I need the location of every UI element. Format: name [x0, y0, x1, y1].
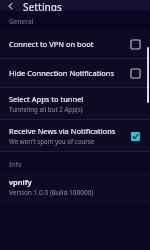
- button[interactable]: Connect to VPN on boot: [0, 30, 150, 58]
- button[interactable]: vpnify: [0, 172, 150, 204]
- staticText: vpnify: [9, 177, 32, 187]
- button[interactable]: Back: [4, 0, 18, 11]
- staticText: Hide Connection Notifications: [9, 68, 115, 78]
- button[interactable]: Hide Connection Notifications: [0, 59, 150, 87]
- staticText: We won't spam you of course: [9, 137, 95, 145]
- button[interactable]: Unchecked: [127, 36, 143, 52]
- staticText: Receive News via Notifications: [9, 126, 116, 136]
- button[interactable]: Checked: [127, 128, 143, 144]
- button[interactable]: Unchecked: [127, 65, 143, 81]
- button[interactable]: Select Apps to tunnel: [0, 88, 150, 119]
- staticText: Select Apps to tunnel: [9, 94, 84, 104]
- staticText: Tunneling all but 2 App(s): [9, 105, 83, 113]
- staticText: Settings: [23, 0, 62, 11]
- staticText: Connect to VPN on boot: [9, 39, 94, 49]
- staticText: Info: [9, 160, 22, 169]
- staticText: Version 1.0.0 (Build 100000): [9, 188, 94, 197]
- staticText: General: [9, 17, 34, 26]
- button[interactable]: Receive News via Notifications: [0, 120, 150, 151]
